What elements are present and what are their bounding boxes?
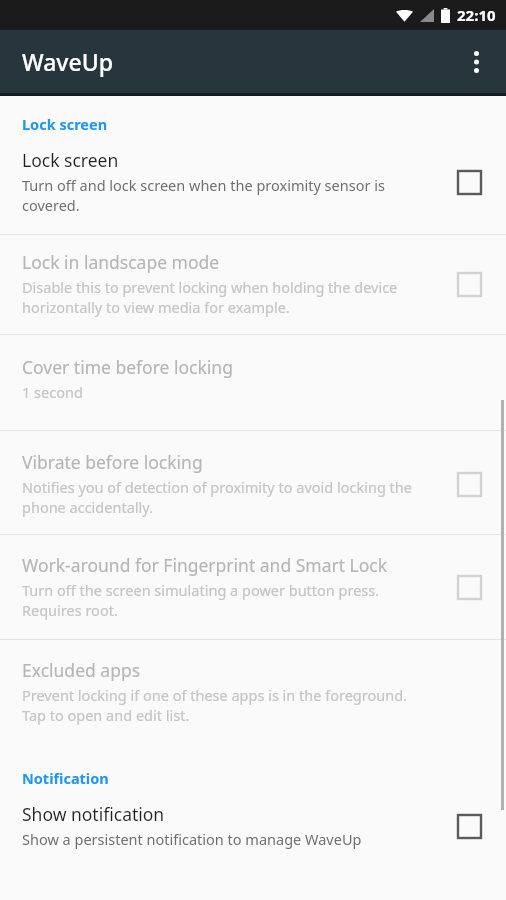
button[interactable]: Lock in landscape mode checkbox (446, 261, 492, 307)
staticText: Notification (22, 768, 109, 788)
button[interactable]: Excluded apps (0, 640, 506, 746)
staticText: Lock screen (22, 114, 108, 134)
staticText: Turn off the screen simulating a power b… (22, 580, 432, 621)
button[interactable]: Cover time before locking (0, 335, 506, 430)
button[interactable]: Work-around for Fingerprint and Smart Lo… (0, 535, 506, 639)
button[interactable]: More options (452, 38, 500, 86)
staticText: Show a persistent notification to manage… (22, 829, 362, 849)
button[interactable]: Vibrate before locking checkbox (446, 461, 492, 507)
button[interactable]: Lock in landscape mode (0, 235, 506, 334)
button[interactable]: Show notification (0, 792, 506, 867)
staticText: Prevent locking if one of these apps is … (22, 685, 432, 726)
button[interactable]: Vibrate before locking (0, 431, 506, 534)
button[interactable]: Lock screen checkbox (446, 159, 492, 205)
staticText: Cover time before locking (22, 355, 233, 379)
staticText: 1 second (22, 382, 83, 402)
staticText: Lock screen (22, 148, 119, 172)
staticText: Excluded apps (22, 658, 141, 682)
button[interactable]: Lock screen (0, 138, 506, 234)
staticText: Disable this to prevent locking when hol… (22, 277, 432, 318)
staticText: Vibrate before locking (22, 450, 203, 474)
staticText: WaveUp (22, 46, 113, 77)
button[interactable]: Work-around for Fingerprint and Smart Lo… (446, 564, 492, 610)
staticText: Work-around for Fingerprint and Smart Lo… (22, 553, 388, 577)
staticText: 22:10 (457, 5, 496, 25)
button[interactable]: Show notification checkbox (446, 803, 492, 849)
staticText: Lock in landscape mode (22, 250, 220, 274)
staticText: Notifies you of detection of proximity t… (22, 477, 432, 518)
staticText: Show notification (22, 802, 165, 826)
staticText: Turn off and lock screen when the proxim… (22, 175, 432, 216)
